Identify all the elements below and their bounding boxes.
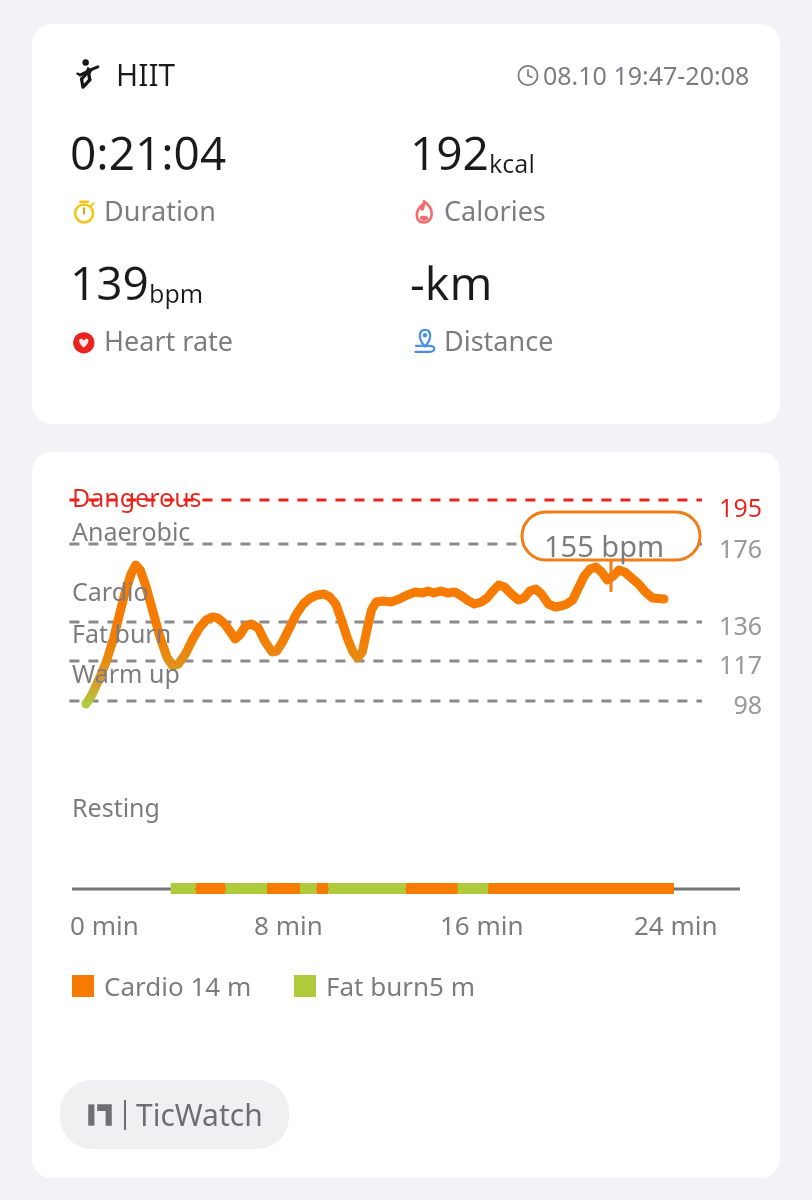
button[interactable]: TicWatch logo: [60, 1080, 289, 1149]
button[interactable]: 139: [70, 251, 410, 359]
staticText: Cardio 14 m: [104, 968, 252, 1003]
staticText: 8 min: [254, 907, 323, 942]
staticText: Heart rate: [104, 322, 234, 359]
other: TicWatch logo: [86, 1101, 114, 1129]
staticText: 24 min: [634, 907, 718, 942]
staticText: Cardio: [72, 574, 149, 608]
staticText: 0 min: [70, 907, 139, 942]
staticText: Distance: [444, 322, 554, 359]
staticText: 136: [710, 608, 762, 642]
staticText: 195: [710, 490, 762, 524]
staticText: Anaerobic: [72, 514, 191, 548]
staticText: Fat burn5 m: [326, 968, 476, 1003]
other: Running: [70, 58, 104, 92]
staticText: 139: [70, 251, 149, 314]
staticText: HIIT: [116, 54, 176, 95]
staticText: 0:21:04: [70, 121, 227, 184]
staticText: kcal: [489, 146, 535, 180]
staticText: Warm up: [72, 656, 180, 690]
staticText: 98: [710, 687, 762, 721]
staticText: 155 bpm: [544, 526, 665, 565]
staticText: 192: [410, 121, 489, 184]
staticText: TicWatch: [136, 1094, 263, 1135]
staticText: 176: [710, 531, 762, 565]
staticText: 08.10 19:47-20:08: [543, 58, 750, 92]
staticText: -km: [410, 251, 493, 314]
button[interactable]: -km: [410, 251, 750, 359]
staticText: Fat burn: [72, 616, 172, 650]
button[interactable]: Running: [32, 24, 780, 424]
staticText: 16 min: [440, 907, 524, 942]
staticText: bpm: [149, 276, 204, 310]
staticText: Dangerous: [72, 480, 202, 514]
staticText: 117: [710, 647, 762, 681]
staticText: Duration: [104, 192, 216, 229]
button[interactable]: 192: [410, 121, 750, 229]
staticText: Calories: [444, 192, 546, 229]
button[interactable]: Cardio 14 m: [32, 452, 780, 1178]
button[interactable]: 0:21:04: [70, 121, 410, 229]
staticText: Resting: [72, 790, 160, 824]
